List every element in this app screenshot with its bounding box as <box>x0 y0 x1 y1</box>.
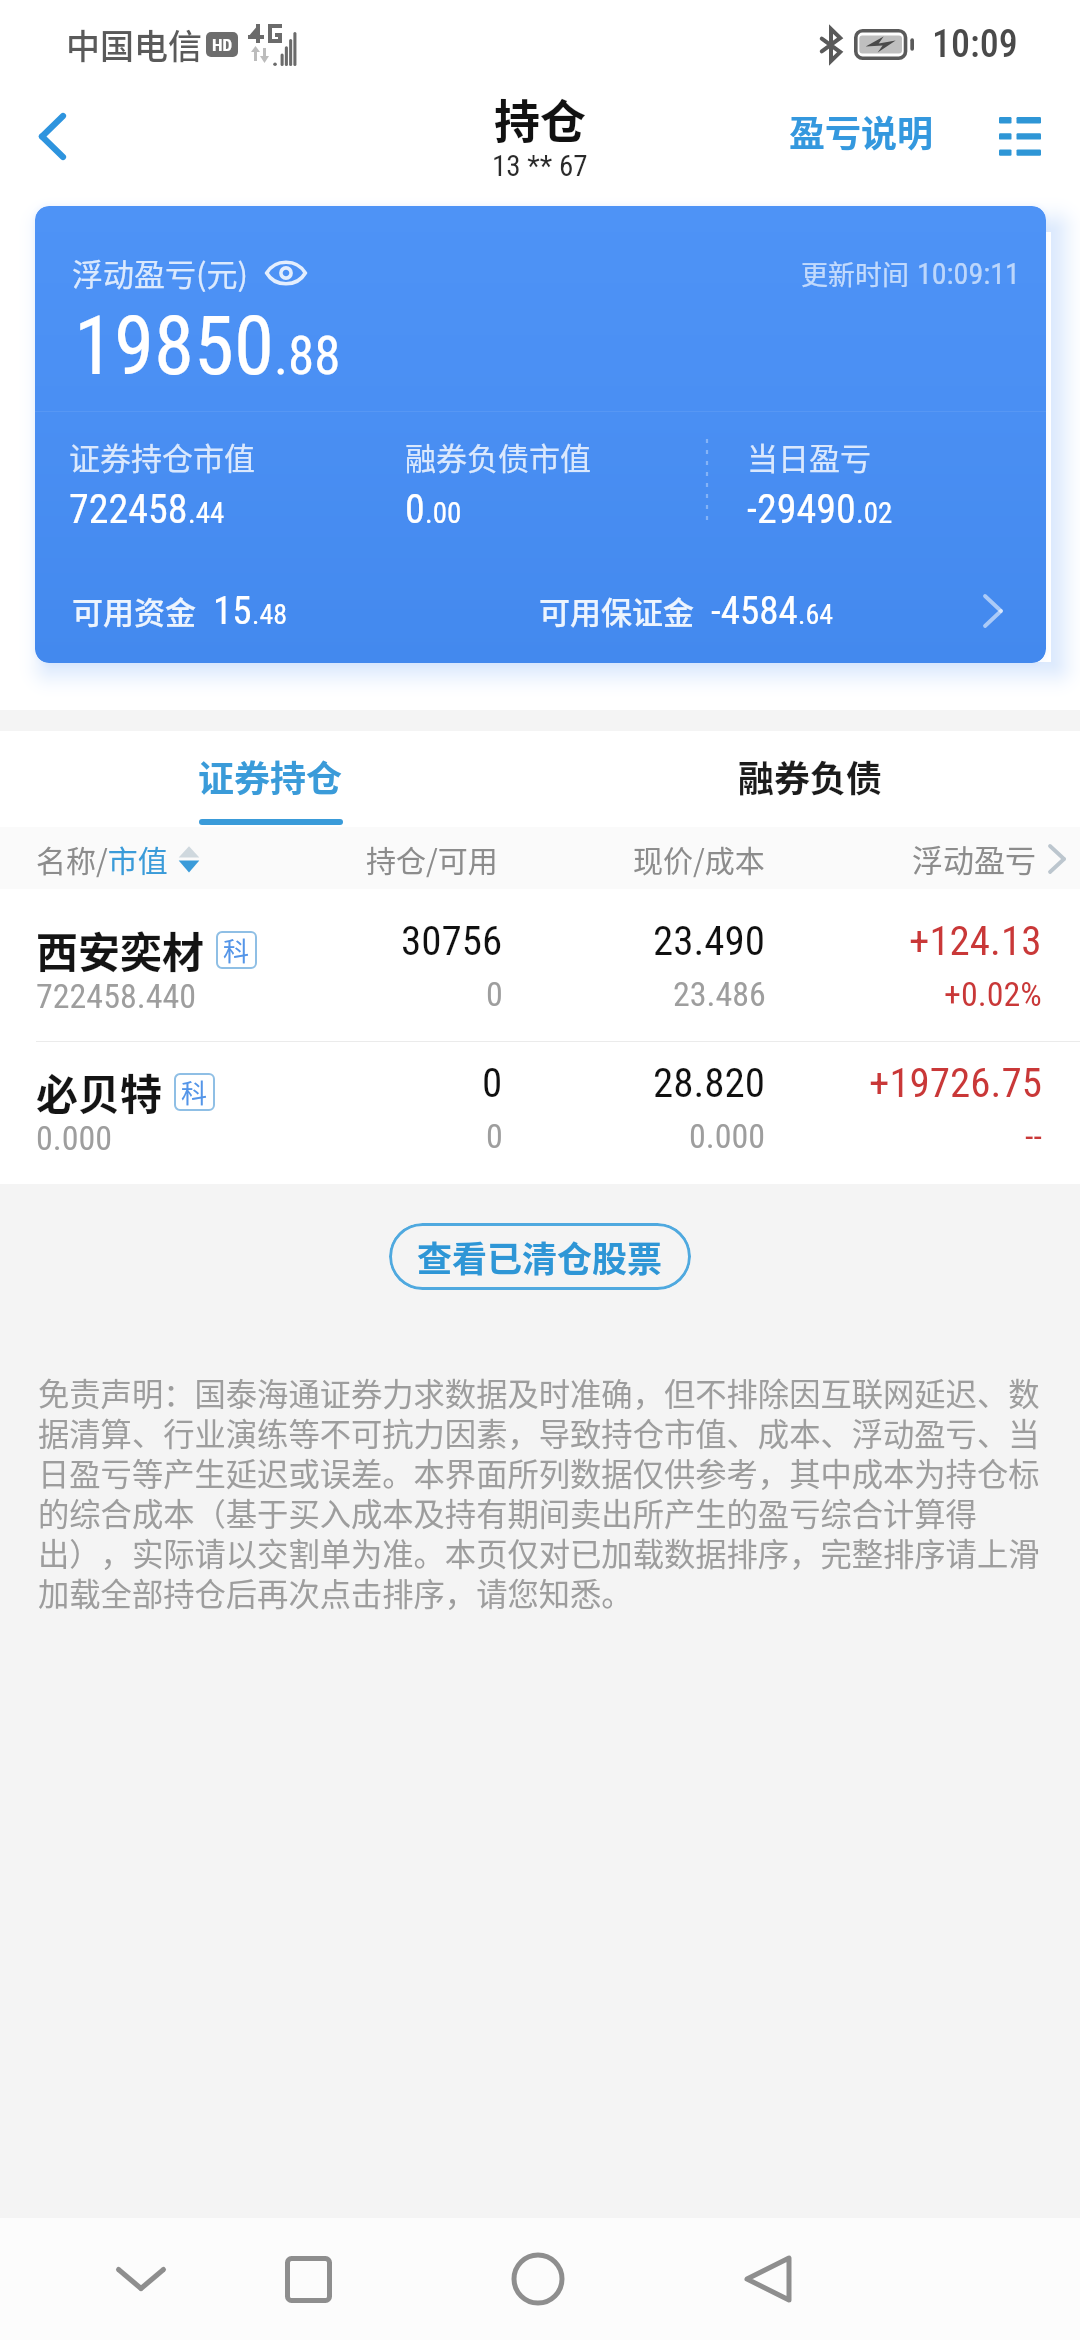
button[interactable]: 名称/市值 <box>36 837 200 880</box>
staticText: 中国电信 <box>66 20 202 69</box>
button[interactable]: 融券负债 <box>540 731 1080 827</box>
button[interactable]: 盈亏说明 <box>783 95 940 167</box>
staticText: +124.13 <box>909 917 1042 965</box>
staticText: 13 ** 67 <box>492 149 588 183</box>
staticText: 融券负债市值 <box>405 434 591 479</box>
staticText: -29490 <box>747 486 856 533</box>
button[interactable]: 证券持仓 <box>0 731 540 827</box>
staticText: 可用保证金 <box>539 588 694 633</box>
staticText: 0.000 <box>36 1118 113 1158</box>
staticText: 0 <box>405 486 425 533</box>
staticText: 名称/市值 <box>36 837 168 880</box>
staticText: 28.820 <box>653 1059 766 1107</box>
button[interactable]: 西安奕材 <box>0 889 1080 1030</box>
staticText: 必贝特 <box>36 1061 163 1122</box>
staticText: 23.486 <box>673 974 766 1014</box>
staticText: 持仓 <box>494 85 586 152</box>
staticText: 10:09:11 <box>917 256 1020 291</box>
staticText: 当日盈亏 <box>747 434 871 479</box>
staticText: 19850 <box>74 299 274 394</box>
staticText: 0 <box>482 1059 503 1107</box>
staticText: .02 <box>856 496 893 530</box>
staticText: 盈亏说明 <box>789 105 934 157</box>
staticText: 15 <box>213 588 252 634</box>
button[interactable]: Back <box>8 92 96 180</box>
staticText: 证券持仓 <box>198 750 343 802</box>
button[interactable]: 查看已清仓股票 <box>389 1223 691 1290</box>
button[interactable]: Home <box>498 2239 578 2319</box>
staticText: .88 <box>274 325 341 387</box>
button[interactable]: Toggle visibility <box>264 256 308 290</box>
staticText: 浮动盈亏 <box>912 836 1036 881</box>
staticText: 融券负债 <box>738 750 883 802</box>
button[interactable]: List view <box>991 107 1049 165</box>
staticText: 722458 <box>69 486 188 533</box>
button[interactable]: Back <box>728 2239 808 2319</box>
staticText: 证券持仓市值 <box>69 434 255 479</box>
staticText: 科 <box>181 1073 208 1111</box>
staticText: 可用资金 <box>72 588 196 633</box>
staticText: 西安奕材 <box>36 919 205 980</box>
staticText: 0.000 <box>689 1116 766 1156</box>
staticText: 更新时间 <box>801 254 909 293</box>
staticText: 0 <box>486 1116 503 1156</box>
staticText: 浮动盈亏(元) <box>72 250 248 295</box>
staticText: 722458.440 <box>36 976 197 1016</box>
staticText: -- <box>1025 1116 1042 1156</box>
staticText: 持仓/可用 <box>366 837 498 880</box>
staticText: 现价/成本 <box>633 837 765 880</box>
staticText: 23.490 <box>653 917 766 965</box>
staticText: +0.02% <box>944 974 1042 1014</box>
button[interactable]: Hide keyboard <box>101 2239 181 2319</box>
staticText: 查看已清仓股票 <box>417 1231 663 1282</box>
staticText: 0 <box>486 974 503 1014</box>
staticText: 科 <box>223 931 250 969</box>
staticText: +19726.75 <box>869 1059 1042 1107</box>
staticText: HD <box>212 35 233 55</box>
button[interactable]: 浮动盈亏(元) <box>35 206 1046 663</box>
staticText: .00 <box>425 496 462 530</box>
staticText: .44 <box>188 496 225 530</box>
staticText: 10:09 <box>932 22 1018 67</box>
button[interactable]: Recent apps <box>268 2239 348 2319</box>
button[interactable]: 必贝特 <box>0 1031 1080 1172</box>
staticText: 免责声明：国泰海通证券力求数据及时准确，但不排除因互联网延迟、数据清算、行业演练… <box>38 1370 1043 1615</box>
staticText: -4584 <box>711 588 798 634</box>
staticText: .48 <box>252 598 288 631</box>
staticText: 30756 <box>401 917 503 965</box>
staticText: .64 <box>798 598 834 631</box>
